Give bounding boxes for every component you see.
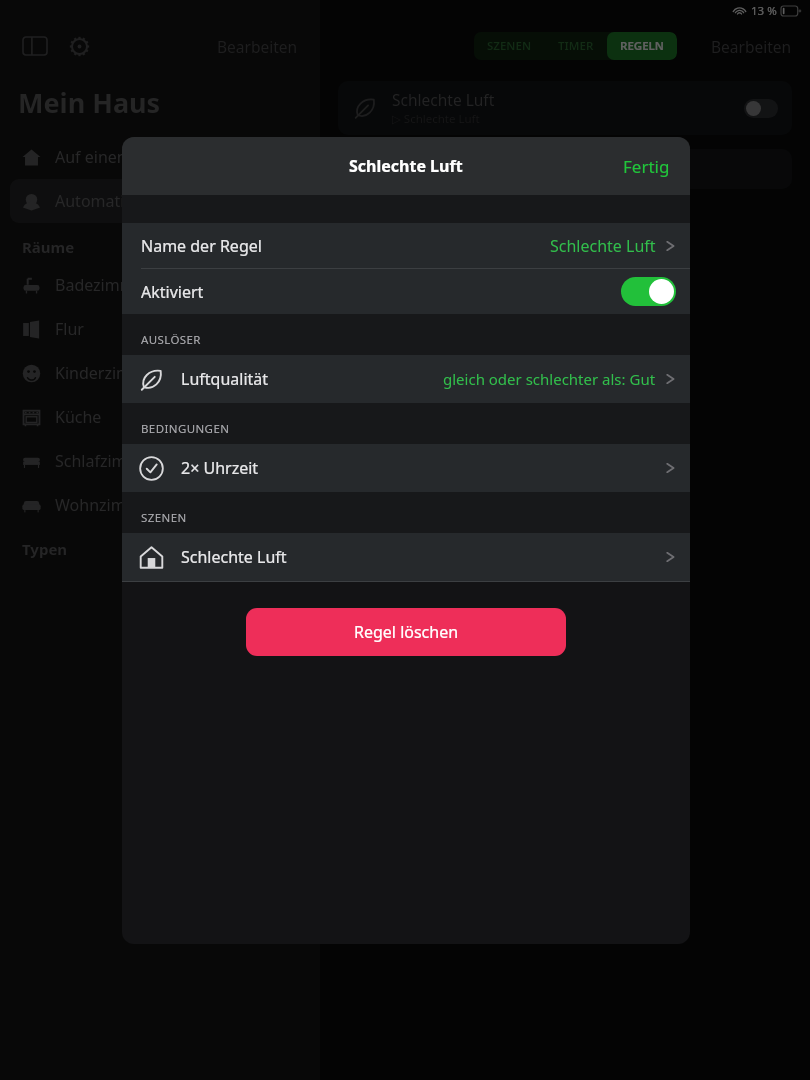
button[interactable]: Wohnzimmer (10, 483, 310, 527)
staticText: Aktiviert (141, 281, 204, 303)
button[interactable]: Auf einen Blick (10, 135, 310, 179)
staticText: 2× Uhrzeit (181, 457, 259, 479)
button[interactable]: Aktiviert (122, 269, 690, 314)
staticText: ▷ Schlechte Luft (392, 111, 480, 127)
staticText: Schlechte Luft (550, 235, 656, 257)
button[interactable]: Name der Regel (122, 223, 690, 268)
staticText: Kinderzimmer (55, 362, 162, 384)
staticText: Schlechte Luft (392, 89, 495, 110)
button[interactable]: Einstellungen (62, 29, 96, 63)
button[interactable]: Badezimmer (10, 263, 310, 307)
button[interactable] (338, 149, 792, 189)
button[interactable]: Luftqualität (122, 355, 690, 403)
staticText: Automationen (55, 190, 163, 212)
button[interactable]: Bearbeiten (707, 32, 796, 61)
button[interactable]: Sidebar (18, 29, 52, 63)
staticText: Fertig (623, 155, 670, 178)
staticText: REGELN (620, 38, 664, 54)
staticText: Flur (55, 318, 84, 340)
staticText: Typen (22, 539, 68, 559)
staticText: gleich oder schlechter als: Gut (443, 369, 656, 389)
staticText: SZENEN (141, 510, 187, 526)
button[interactable]: Küche (10, 395, 310, 439)
staticText: Name der Regel (141, 235, 262, 257)
staticText: Räume (22, 237, 75, 257)
button[interactable]: Flur (10, 307, 310, 351)
staticText: Schlechte Luft (181, 546, 287, 568)
button[interactable]: Regel aktivieren (744, 99, 778, 118)
staticText: Bearbeiten (711, 36, 792, 57)
button[interactable]: REGELN (607, 32, 677, 60)
button[interactable]: Regel löschen (246, 608, 566, 656)
staticText: Küche (55, 406, 102, 428)
staticText: Badezimmer (55, 274, 151, 296)
staticText: BEDINGUNGEN (141, 421, 230, 437)
staticText: AUSLÖSER (141, 332, 201, 348)
button[interactable]: Schlafzimmer (10, 439, 310, 483)
button[interactable]: Bearbeiten (213, 32, 302, 61)
button[interactable]: Automationen (10, 179, 310, 223)
staticText: Auf einen Blick (55, 146, 166, 168)
button[interactable]: Aktiviert (621, 277, 676, 306)
staticText: Schlechte Luft (349, 155, 463, 177)
staticText: Schlafzimmer (55, 450, 158, 472)
staticText: SZENEN (487, 38, 532, 54)
button[interactable]: SZENEN (474, 32, 545, 60)
staticText: Regel löschen (354, 621, 459, 643)
staticText: Luftqualität (181, 368, 269, 390)
button[interactable]: Fertig (603, 145, 690, 188)
staticText: Bearbeiten (217, 36, 298, 57)
button[interactable]: Schlechte Luft (338, 81, 792, 135)
staticText: 13 % (751, 3, 777, 19)
staticText: Mein Haus (18, 84, 161, 121)
staticText: Wohnzimmer (55, 494, 157, 516)
button[interactable]: TIMER (545, 32, 607, 60)
staticText: TIMER (558, 38, 594, 54)
button[interactable]: Schlechte Luft (122, 533, 690, 581)
button[interactable]: Kinderzimmer (10, 351, 310, 395)
button[interactable]: 2× Uhrzeit (122, 444, 690, 492)
